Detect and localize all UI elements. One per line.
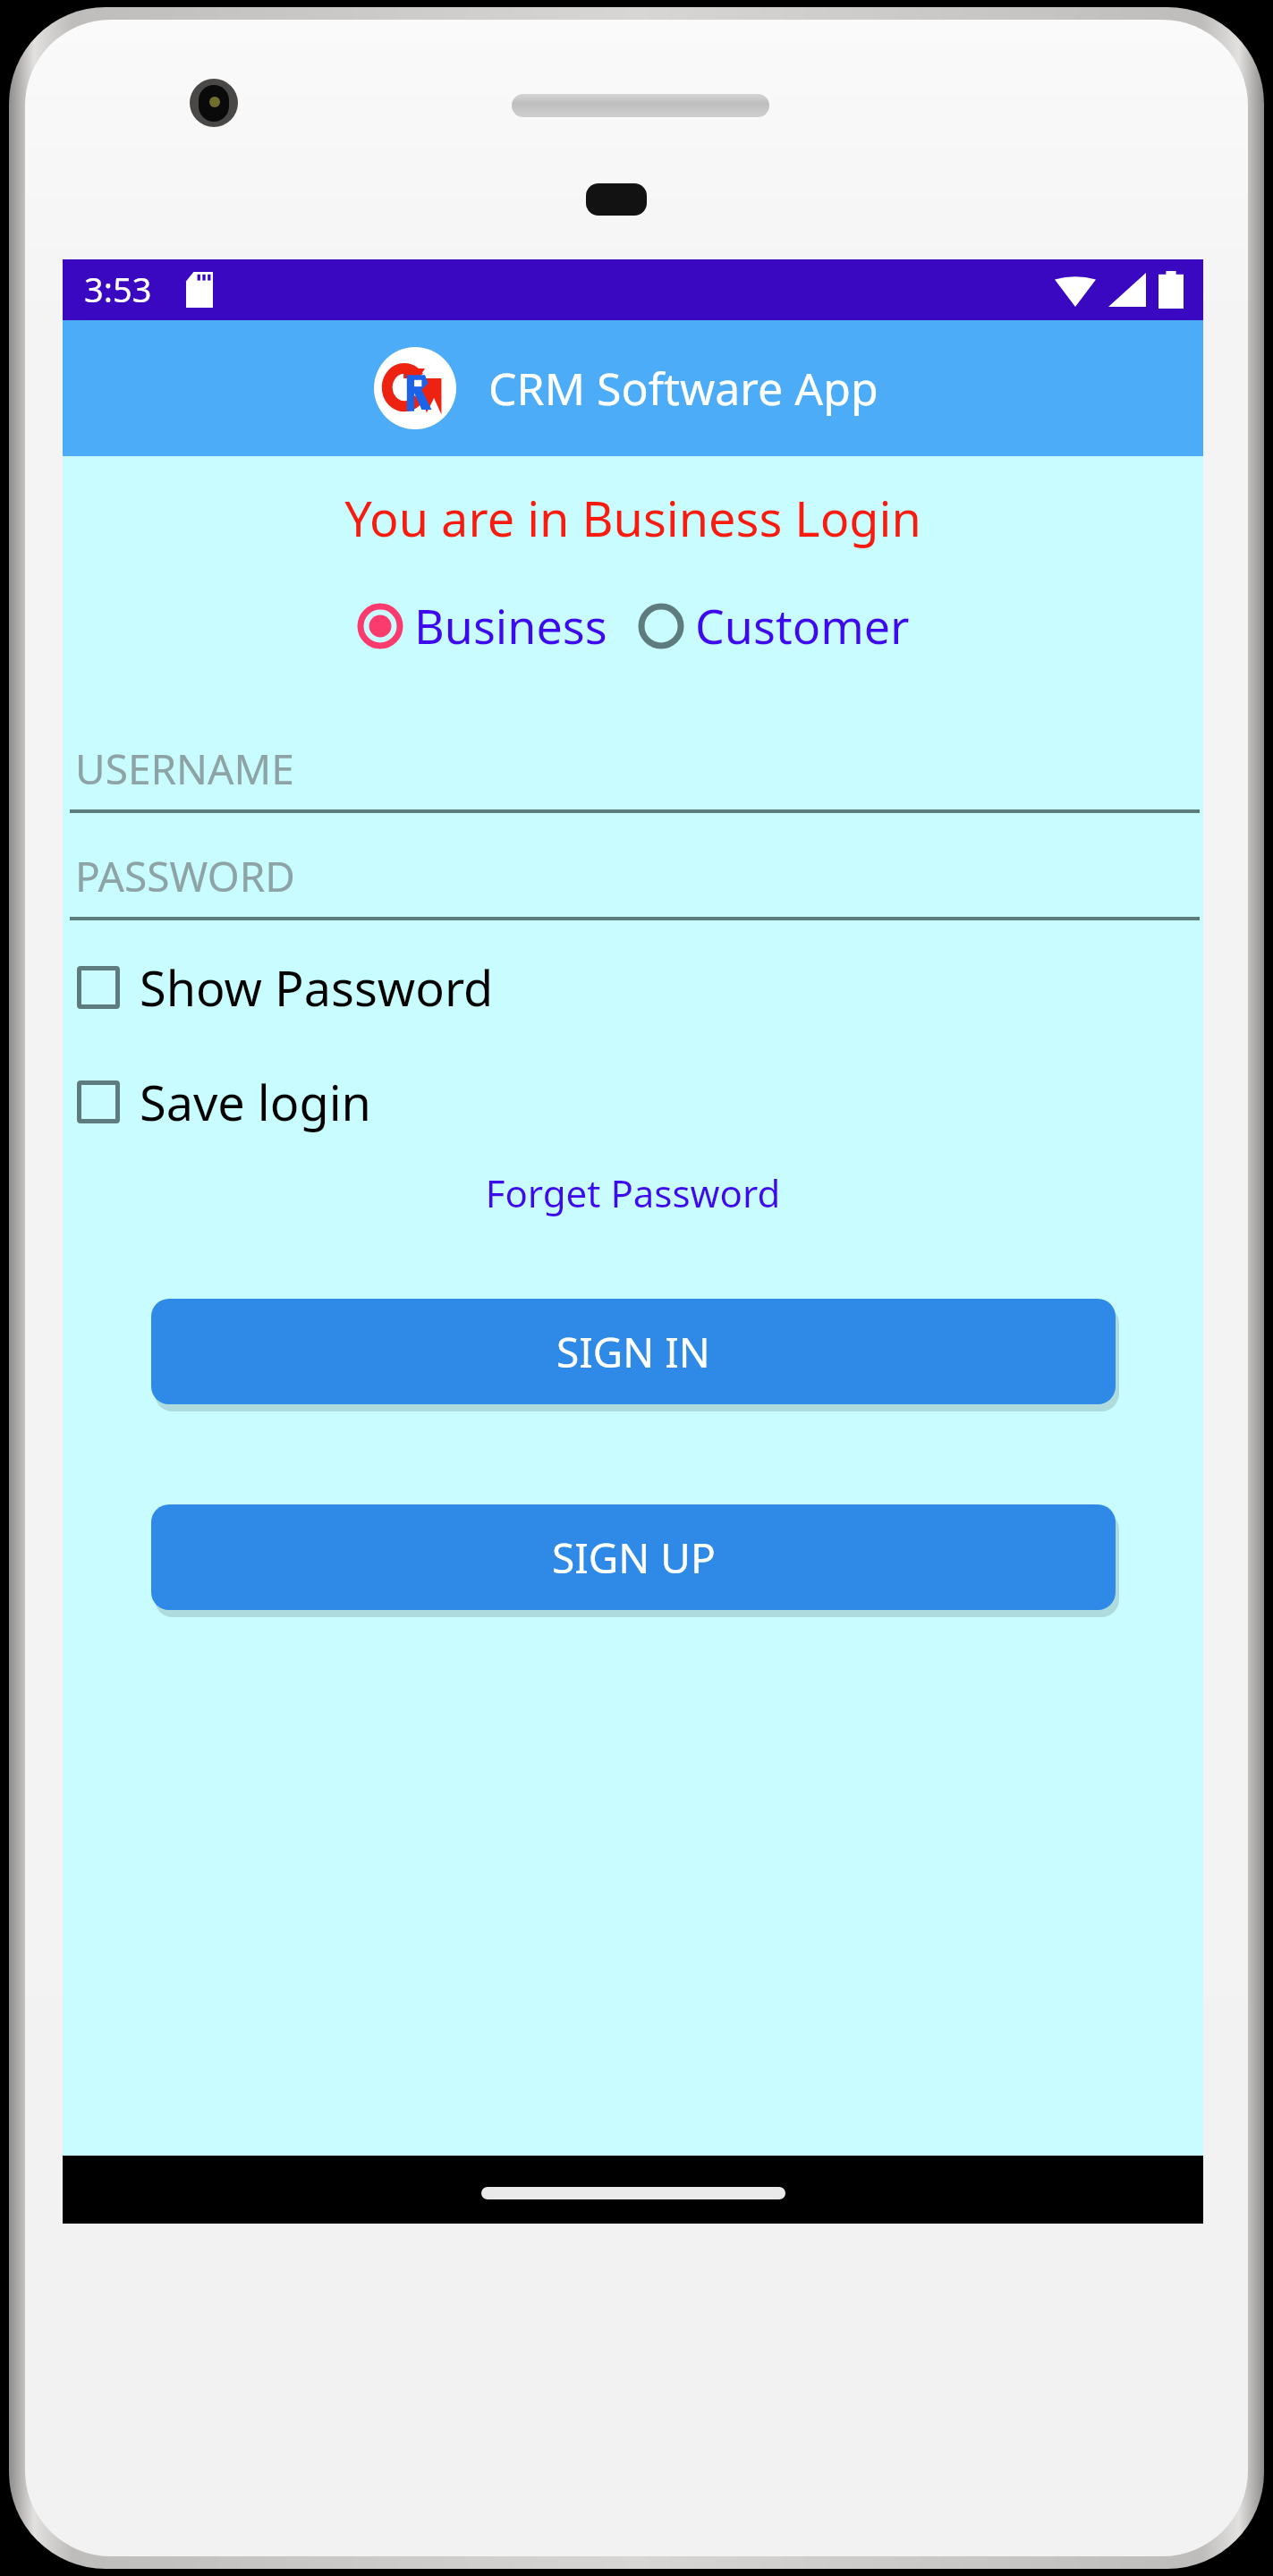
- staticText: Forget Password: [63, 1167, 1203, 1218]
- staticText: Business: [414, 594, 607, 657]
- staticText: Save login: [140, 1069, 371, 1135]
- staticText: SIGN UP: [552, 1529, 716, 1586]
- button[interactable]: Customer: [634, 589, 913, 663]
- button[interactable]: Show Password: [63, 947, 1203, 1028]
- staticText: Show Password: [140, 954, 494, 1021]
- staticText: CRM Software App: [488, 358, 878, 419]
- button[interactable]: Business: [353, 589, 611, 663]
- staticText: SIGN IN: [556, 1324, 710, 1380]
- staticText: 3:53: [84, 266, 152, 312]
- button[interactable]: Home gesture bar: [481, 2187, 785, 2199]
- button[interactable]: PASSWORD: [63, 835, 1203, 920]
- button[interactable]: SIGN IN: [151, 1299, 1116, 1404]
- button[interactable]: SIGN UP: [151, 1504, 1116, 1610]
- button[interactable]: Forget Password: [63, 1162, 1203, 1224]
- staticText: USERNAME: [75, 741, 294, 797]
- staticText: Customer: [695, 594, 910, 657]
- staticText: You are in Business Login: [63, 485, 1203, 551]
- button[interactable]: Save login: [63, 1062, 1203, 1142]
- button[interactable]: USERNAME: [63, 727, 1203, 813]
- staticText: PASSWORD: [75, 848, 295, 904]
